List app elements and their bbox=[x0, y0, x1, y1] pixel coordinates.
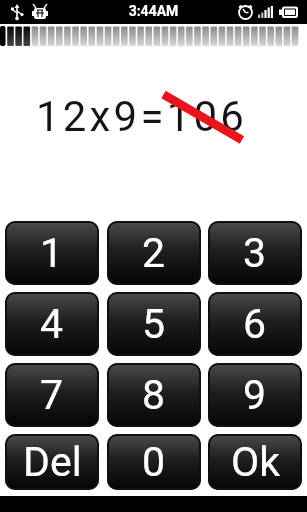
button[interactable]: 7 bbox=[5, 363, 99, 427]
staticText: 2 bbox=[142, 229, 166, 277]
staticText: 3 bbox=[243, 229, 267, 277]
staticText: 7 bbox=[40, 371, 64, 419]
staticText: 3:44AM bbox=[0, 3, 307, 19]
staticText: 12x9=106 bbox=[0, 92, 295, 141]
button[interactable]: 3 bbox=[208, 221, 302, 285]
staticText: Del bbox=[23, 438, 82, 486]
button[interactable]: Ok bbox=[208, 434, 302, 490]
button[interactable]: 1 bbox=[5, 221, 99, 285]
button[interactable]: 8 bbox=[107, 363, 201, 427]
staticText: 6 bbox=[243, 300, 267, 348]
button[interactable]: 9 bbox=[208, 363, 302, 427]
staticText: 0 bbox=[142, 438, 166, 486]
staticText: 4 bbox=[40, 300, 64, 348]
button[interactable]: 5 bbox=[107, 292, 201, 356]
staticText: 9 bbox=[243, 371, 267, 419]
button[interactable]: 4 bbox=[5, 292, 99, 356]
staticText: 1 bbox=[40, 229, 64, 277]
staticText: Ok bbox=[231, 438, 280, 486]
staticText: 8 bbox=[142, 371, 166, 419]
button[interactable]: 0 bbox=[107, 434, 201, 490]
staticText: 5 bbox=[142, 300, 166, 348]
button[interactable]: 6 bbox=[208, 292, 302, 356]
button[interactable]: Del bbox=[5, 434, 99, 490]
button[interactable]: 2 bbox=[107, 221, 201, 285]
